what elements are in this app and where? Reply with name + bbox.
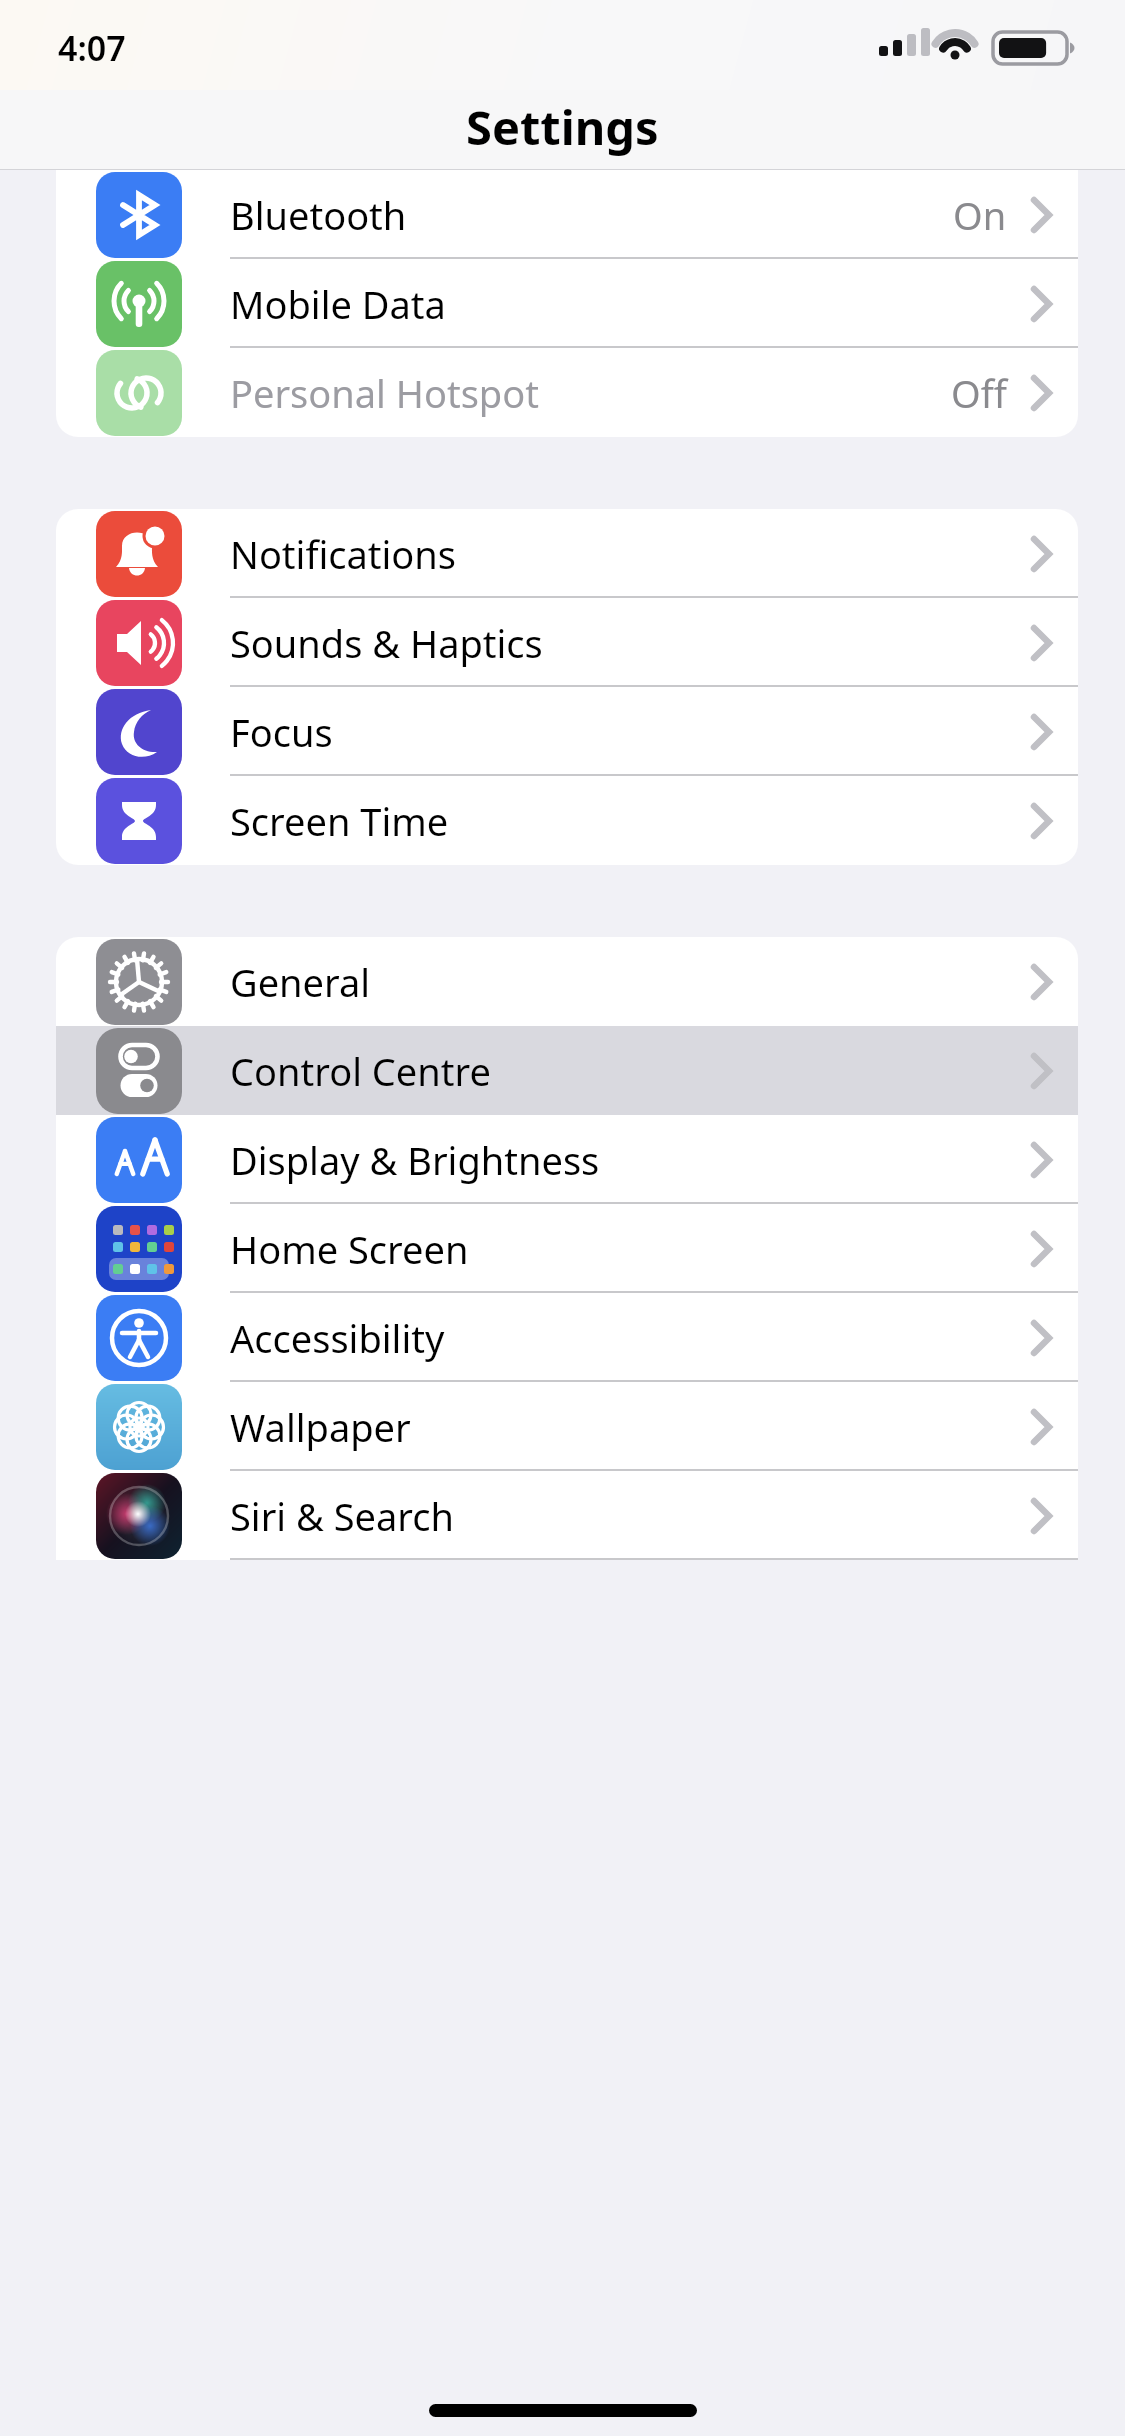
button[interactable]: Siri & Search xyxy=(56,1471,1078,1560)
staticText: Mobile Data xyxy=(230,278,446,330)
button[interactable]: Screen Time xyxy=(56,776,1078,865)
staticText: Home Screen xyxy=(230,1223,469,1275)
button[interactable]: Mobile Data xyxy=(56,259,1078,348)
button[interactable]: Bluetooth xyxy=(56,170,1078,259)
staticText: Personal Hotspot xyxy=(230,367,539,419)
button[interactable]: Wallpaper xyxy=(56,1382,1078,1471)
button[interactable]: Display & Brightness xyxy=(56,1115,1078,1204)
staticText: Bluetooth xyxy=(230,189,407,241)
staticText: General xyxy=(230,956,371,1008)
staticText: Sounds & Haptics xyxy=(230,617,543,669)
staticText: Control Centre xyxy=(230,1045,491,1097)
button[interactable]: Control Centre xyxy=(56,1026,1078,1115)
staticText: Siri & Search xyxy=(230,1490,455,1542)
staticText: Display & Brightness xyxy=(230,1134,600,1186)
staticText: Accessibility xyxy=(230,1312,445,1364)
button[interactable]: Focus xyxy=(56,687,1078,776)
button[interactable]: Personal Hotspot xyxy=(56,348,1078,437)
button[interactable]: Accessibility xyxy=(56,1293,1078,1382)
staticText: Off xyxy=(951,367,1007,419)
staticText: Notifications xyxy=(230,528,457,580)
button[interactable]: Sounds & Haptics xyxy=(56,598,1078,687)
staticText: Settings xyxy=(466,95,659,159)
staticText: Screen Time xyxy=(230,795,449,847)
button[interactable]: Notifications xyxy=(56,509,1078,598)
button[interactable]: Home Screen xyxy=(56,1204,1078,1293)
staticText: Wallpaper xyxy=(230,1401,411,1453)
staticText: Focus xyxy=(230,706,333,758)
staticText: On xyxy=(953,189,1007,241)
staticText: 4:07 xyxy=(58,25,126,71)
button[interactable]: General xyxy=(56,937,1078,1026)
